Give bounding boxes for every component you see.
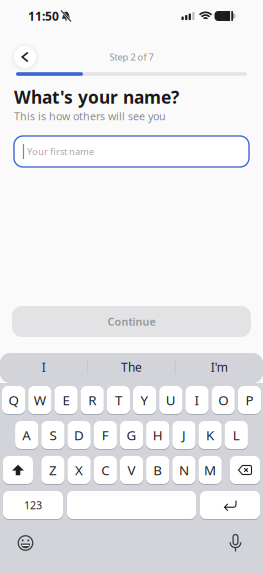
staticText: A <box>22 426 31 444</box>
button[interactable]: Q <box>2 385 25 414</box>
staticText: Y <box>141 391 149 409</box>
staticText: C <box>101 461 109 479</box>
staticText: F <box>102 426 109 444</box>
staticText: What's your name? <box>14 85 179 108</box>
staticText: O <box>218 391 228 409</box>
button[interactable]: I'm <box>179 354 259 380</box>
button[interactable] <box>11 43 39 71</box>
button[interactable] <box>3 455 33 484</box>
button[interactable]: Z <box>41 455 64 484</box>
staticText: X <box>75 461 83 479</box>
staticText: V <box>127 461 135 479</box>
staticText: B <box>153 461 162 479</box>
button[interactable]: N <box>172 455 195 484</box>
button[interactable]: D <box>67 420 91 449</box>
button[interactable]: M <box>198 455 222 484</box>
button[interactable]: W <box>28 385 51 414</box>
button[interactable]: U <box>159 385 182 414</box>
staticText: W <box>34 391 46 409</box>
button[interactable]: F <box>94 420 117 449</box>
staticText: This is how others will see you <box>14 109 166 123</box>
button[interactable]: 123 <box>3 490 63 519</box>
staticText: I'm <box>211 359 228 375</box>
button[interactable]: A <box>15 420 38 449</box>
staticText: U <box>166 391 176 409</box>
staticText: 123 <box>24 498 42 512</box>
button[interactable]: X <box>67 455 91 484</box>
staticText: Step 2 of 7 <box>109 51 153 63</box>
staticText: Q <box>9 391 19 409</box>
button[interactable] <box>224 532 246 554</box>
staticText: 11:50 <box>28 8 59 24</box>
button[interactable] <box>230 455 260 484</box>
staticText: N <box>179 461 189 479</box>
staticText: K <box>206 426 214 444</box>
button[interactable]: S <box>41 420 64 449</box>
staticText: G <box>126 426 136 444</box>
staticText: S <box>49 426 56 444</box>
button[interactable] <box>200 490 260 519</box>
staticText: L <box>233 426 240 444</box>
staticText: D <box>74 426 84 444</box>
button[interactable]: Y <box>133 385 156 414</box>
button[interactable]: C <box>94 455 117 484</box>
button[interactable]: J <box>172 420 195 449</box>
button[interactable]: Your first name <box>14 136 249 167</box>
staticText: I <box>42 359 46 375</box>
staticText: I <box>194 391 199 409</box>
button[interactable]: I <box>4 354 84 380</box>
button[interactable]: O <box>212 385 235 414</box>
button[interactable]: Continue <box>12 306 251 337</box>
staticText: H <box>153 426 163 444</box>
button[interactable]: V <box>120 455 143 484</box>
button[interactable]: G <box>120 420 143 449</box>
button[interactable]: T <box>107 385 130 414</box>
button[interactable]: I <box>185 385 209 414</box>
staticText: The <box>121 359 142 375</box>
staticText: J <box>182 426 186 444</box>
staticText: Continue <box>107 314 155 329</box>
button[interactable]: E <box>54 385 78 414</box>
button[interactable]: R <box>81 385 104 414</box>
staticText: R <box>88 391 96 409</box>
button[interactable]: The <box>91 354 171 380</box>
button[interactable]: P <box>238 385 261 414</box>
staticText: Your first name <box>27 145 94 158</box>
staticText: M <box>204 461 216 479</box>
staticText: E <box>62 391 69 409</box>
staticText: P <box>245 391 253 409</box>
button[interactable]: H <box>146 420 169 449</box>
staticText: T <box>115 391 122 409</box>
button[interactable] <box>14 532 36 554</box>
button[interactable]: L <box>225 420 248 449</box>
button[interactable]: B <box>146 455 169 484</box>
staticText: Z <box>49 461 57 479</box>
button[interactable] <box>67 490 196 519</box>
button[interactable]: K <box>198 420 222 449</box>
